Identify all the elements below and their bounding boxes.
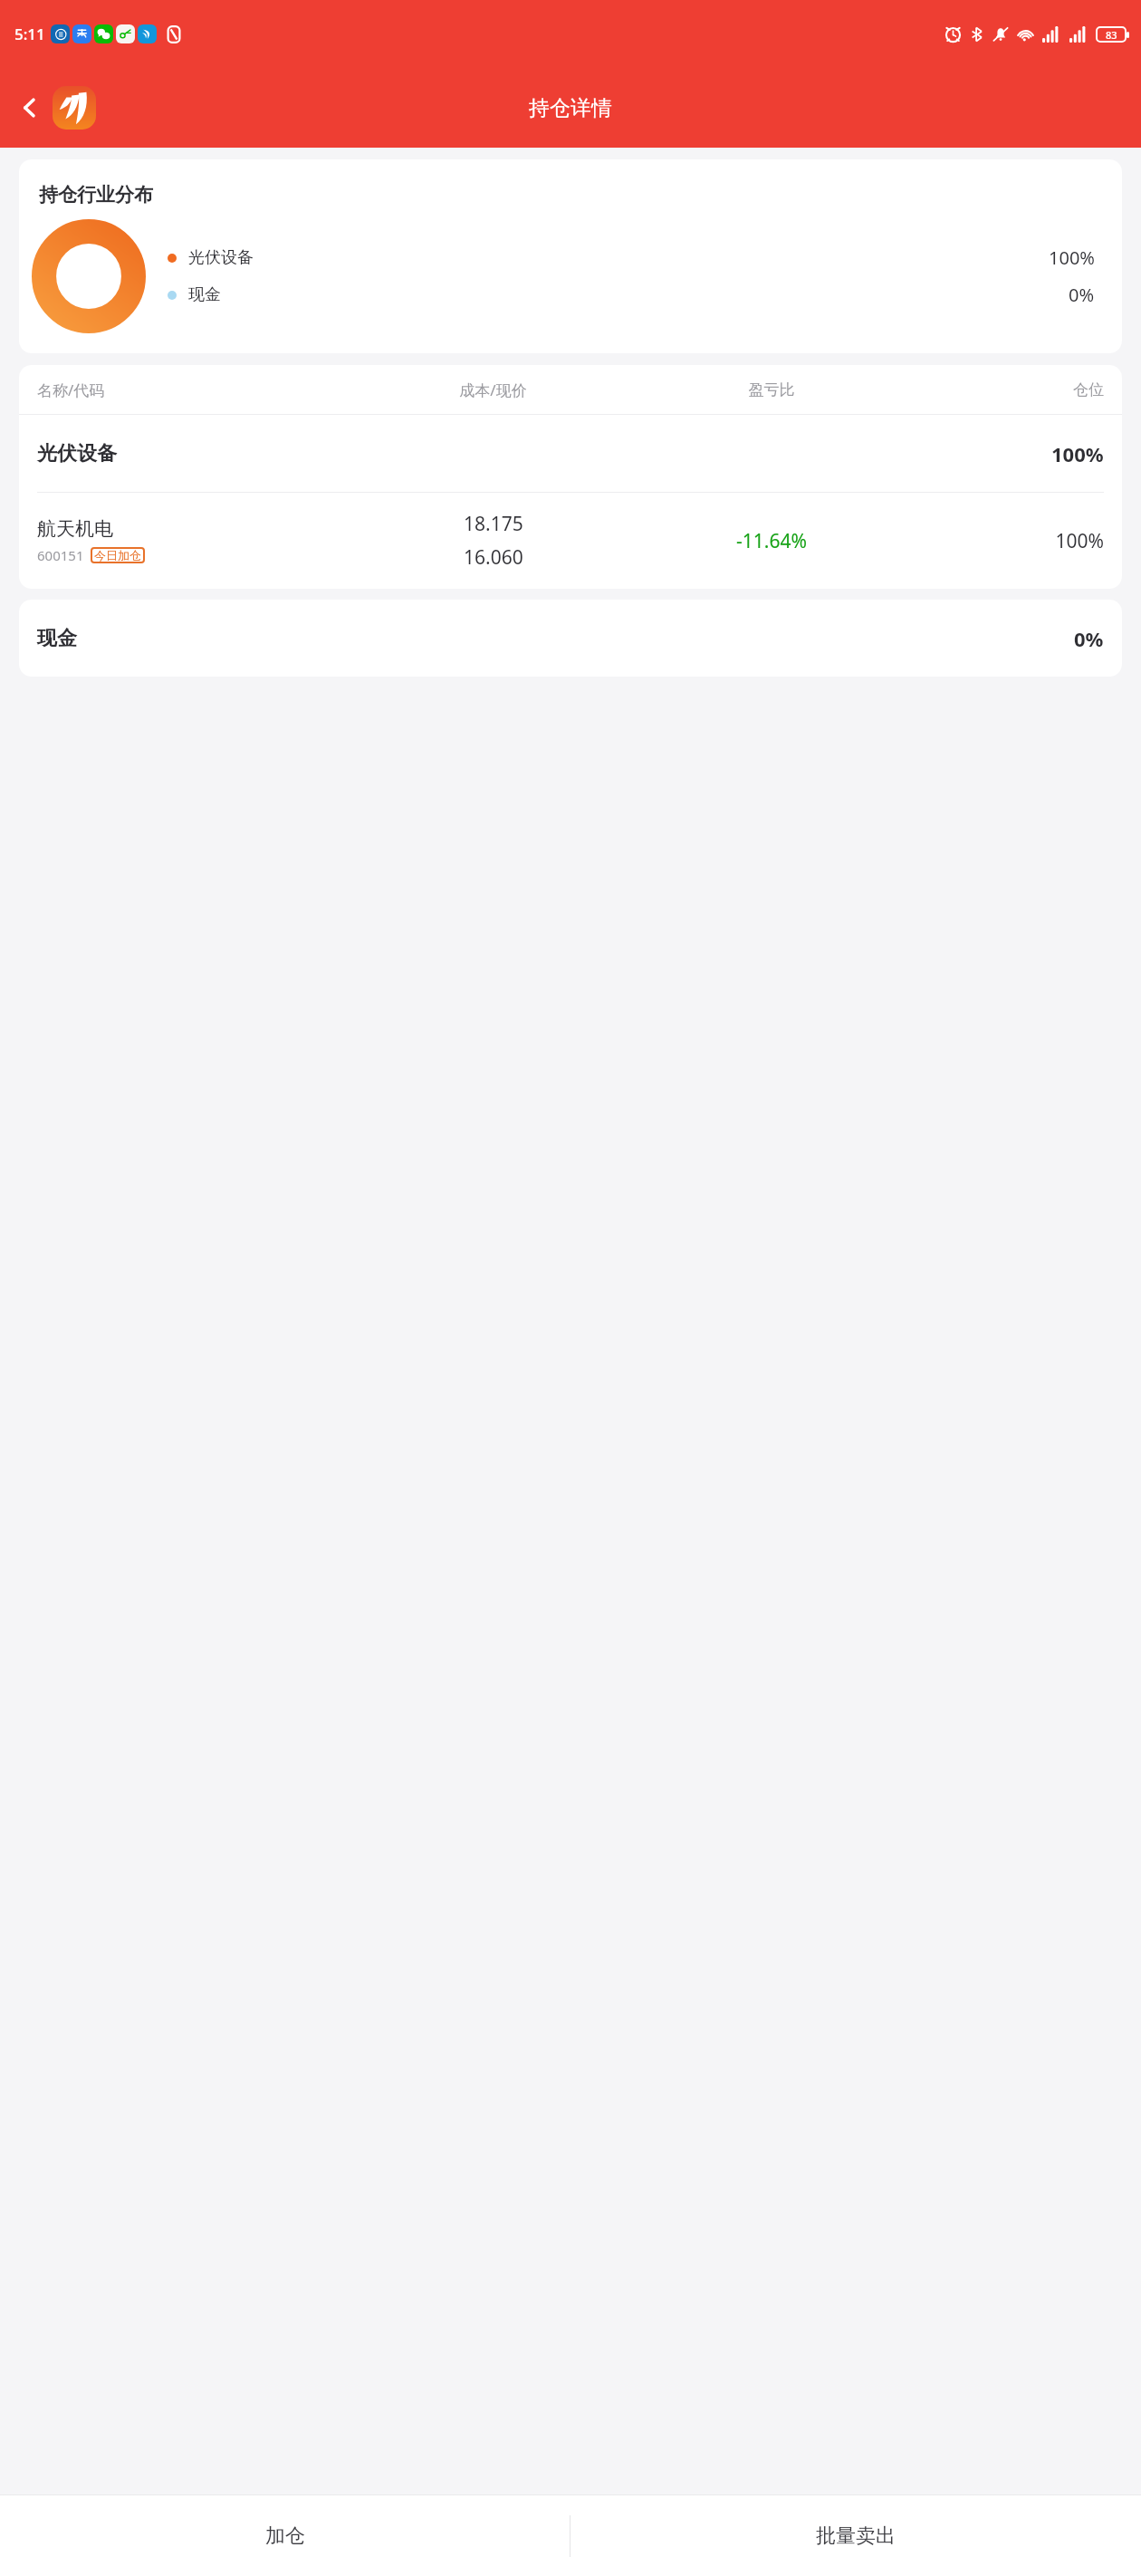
- staticText: 现金: [188, 284, 221, 305]
- staticText: 5:11: [14, 24, 45, 44]
- staticText: 100%: [1049, 245, 1095, 270]
- staticText: 成本/现价: [345, 380, 641, 400]
- staticText: 加仓: [265, 2523, 305, 2549]
- staticText: 0%: [1069, 283, 1095, 307]
- button[interactable]: 现金: [19, 600, 1122, 677]
- staticText: 100%: [902, 528, 1104, 554]
- staticText: 现金: [37, 626, 77, 651]
- button[interactable]: 批量卖出: [570, 2495, 1141, 2576]
- staticText: 今日加仓: [94, 548, 141, 562]
- staticText: 名称/代码: [37, 380, 345, 400]
- staticText: 600151: [37, 546, 84, 564]
- staticText: 仓位: [902, 380, 1104, 399]
- staticText: 光伏设备: [188, 247, 254, 268]
- staticText: 批量卖出: [816, 2523, 896, 2549]
- staticText: 16.060: [464, 544, 523, 571]
- staticText: 0%: [1074, 625, 1104, 652]
- staticText: 持仓行业分布: [39, 183, 153, 207]
- staticText: 持仓详情: [529, 95, 612, 121]
- staticText: 83: [1106, 28, 1117, 42]
- button[interactable]: 光伏设备: [19, 415, 1122, 492]
- button[interactable]: 航天机电: [19, 493, 1122, 589]
- staticText: 18.175: [464, 511, 523, 537]
- button[interactable]: App logo: [53, 86, 96, 130]
- button[interactable]: Back: [9, 87, 51, 129]
- staticText: 航天机电: [37, 517, 113, 541]
- staticText: 盈亏比: [641, 380, 902, 399]
- button[interactable]: 加仓: [0, 2495, 570, 2576]
- staticText: 100%: [1051, 440, 1104, 467]
- staticText: 光伏设备: [37, 441, 117, 466]
- staticText: -11.64%: [641, 528, 902, 554]
